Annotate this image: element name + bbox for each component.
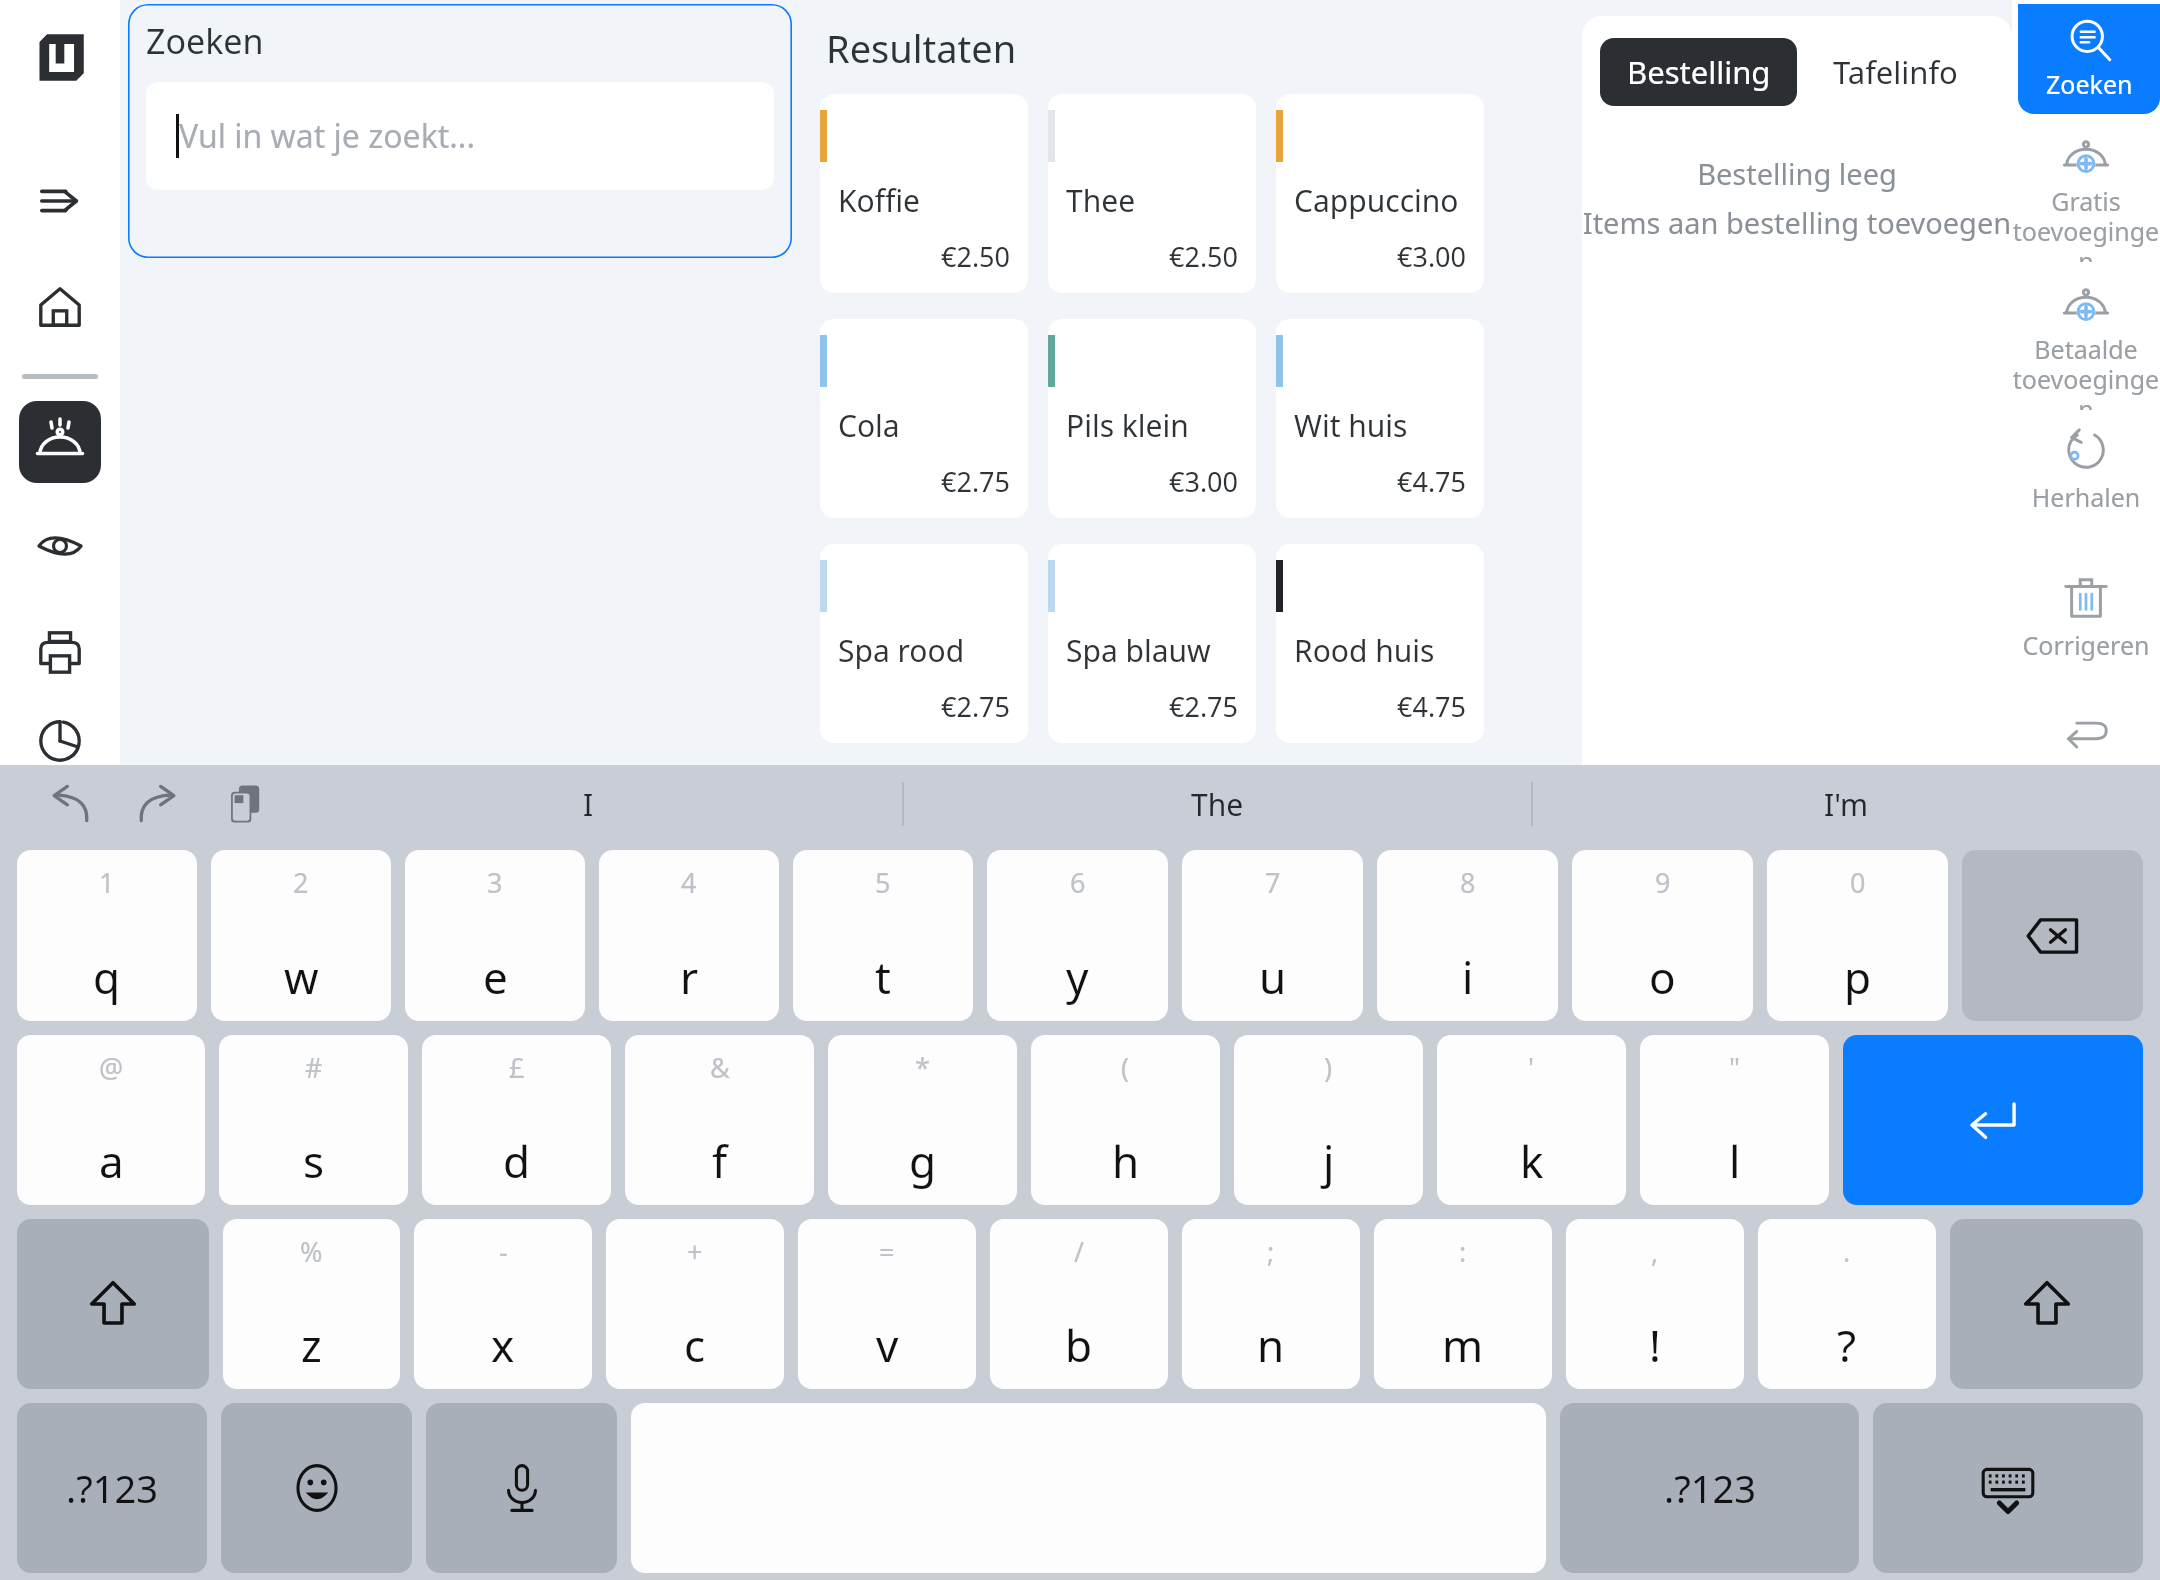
button[interactable]: & (625, 1035, 814, 1205)
button[interactable]: Rood huis (1276, 544, 1484, 743)
staticText: 1 (99, 864, 115, 901)
staticText: j (1323, 1131, 1335, 1191)
button[interactable]: # (219, 1035, 408, 1205)
button[interactable]: Redo (130, 776, 186, 832)
staticText: I (583, 784, 594, 825)
button[interactable]: The (904, 765, 1531, 843)
button[interactable]: * (828, 1035, 1017, 1205)
button[interactable]: mic (426, 1403, 617, 1573)
staticText: ( (1121, 1049, 1130, 1086)
button[interactable]: 9 (1572, 850, 1753, 1021)
staticText: ? (1837, 1315, 1857, 1375)
button[interactable]: 4 (599, 850, 779, 1021)
staticText: . (1843, 1233, 1851, 1270)
button[interactable]: % (223, 1219, 400, 1389)
staticText: ! (1649, 1315, 1661, 1375)
staticText: f (712, 1131, 728, 1191)
button[interactable]: ( (1031, 1035, 1220, 1205)
staticText: 9 (1655, 864, 1671, 901)
button[interactable]: Betaalde toevoegingen (2012, 262, 2160, 410)
button[interactable]: back (1962, 850, 2143, 1021)
button[interactable]: Zoeken (2018, 4, 2160, 114)
button[interactable]: .?123 (1560, 1403, 1859, 1573)
button[interactable]: Cola (820, 319, 1028, 518)
staticText: €2.75 (838, 463, 1010, 500)
staticText: y (1066, 947, 1089, 1007)
button[interactable]: Herhalen (2012, 410, 2160, 558)
button[interactable]: Print (19, 611, 101, 693)
button[interactable]: ' (1437, 1035, 1626, 1205)
button[interactable]: Orders (19, 401, 101, 483)
staticText: 4 (681, 864, 697, 901)
staticText: w (284, 947, 319, 1007)
button[interactable]: Koffie (820, 94, 1028, 293)
button[interactable]: Spa rood (820, 544, 1028, 743)
staticText: c (684, 1315, 706, 1375)
staticText: t (875, 947, 891, 1007)
button[interactable]: = (798, 1219, 976, 1389)
button[interactable]: Gratis toevoegingen (2012, 114, 2160, 262)
button[interactable]: Bestelling (1600, 38, 1797, 106)
button[interactable]: ; (1182, 1219, 1360, 1389)
button[interactable]: Home (19, 266, 101, 348)
button[interactable]: shift (17, 1219, 209, 1389)
button[interactable]: . (1758, 1219, 1936, 1389)
button[interactable]: , (1566, 1219, 1744, 1389)
button[interactable]: Transfer (19, 160, 101, 242)
button[interactable]: Spa blauw (1048, 544, 1256, 743)
button[interactable]: View (19, 505, 101, 587)
button[interactable]: shift (1950, 1219, 2143, 1389)
button[interactable]: Undo (42, 776, 98, 832)
button[interactable]: 7 (1182, 850, 1363, 1021)
button[interactable]: Wit huis (1276, 319, 1484, 518)
button[interactable]: Tafelinfo (1797, 38, 1994, 106)
staticText: m (1442, 1315, 1484, 1375)
staticText: The (1191, 784, 1244, 825)
button[interactable]: emoji (221, 1403, 412, 1573)
button[interactable]: Reports (19, 717, 101, 765)
button[interactable]: Logo (29, 26, 91, 88)
button[interactable]: Back (2012, 706, 2160, 765)
staticText: n (1257, 1315, 1285, 1375)
button[interactable]: enter (1843, 1035, 2143, 1205)
button[interactable]: + (606, 1219, 784, 1389)
button[interactable]: Corrigeren (2012, 558, 2160, 706)
button[interactable]: " (1640, 1035, 1829, 1205)
staticText: 7 (1265, 864, 1281, 901)
button[interactable]: Cappuccino (1276, 94, 1484, 293)
button[interactable]: ) (1234, 1035, 1423, 1205)
staticText: ' (1528, 1049, 1535, 1086)
staticText: €2.50 (1066, 238, 1238, 275)
staticText: €2.75 (838, 688, 1010, 725)
button[interactable]: 5 (793, 850, 973, 1021)
button[interactable]: Pils klein (1048, 319, 1256, 518)
staticText: ; (1267, 1233, 1275, 1270)
button[interactable]: : (1374, 1219, 1552, 1389)
button[interactable]: 0 (1767, 850, 1948, 1021)
staticText: s (303, 1131, 325, 1191)
button[interactable]: 2 (211, 850, 391, 1021)
button[interactable]: 8 (1377, 850, 1558, 1021)
button[interactable]: @ (17, 1035, 205, 1205)
button[interactable]: Clipboard (218, 776, 274, 832)
staticText: Tafelinfo (1833, 51, 1958, 93)
button[interactable]: I'm (1533, 765, 2160, 843)
button[interactable]: I (274, 765, 902, 843)
staticText: Items aan bestelling toevoegen (1582, 203, 2012, 242)
button[interactable]: / (990, 1219, 1168, 1389)
staticText: = (879, 1233, 895, 1270)
button[interactable]: Vul in wat je zoekt... (146, 82, 774, 190)
button[interactable]: - (414, 1219, 592, 1389)
button[interactable]: 1 (17, 850, 197, 1021)
button[interactable]: hide (1873, 1403, 2143, 1573)
staticText: Wit huis (1294, 405, 1408, 446)
button[interactable]: .?123 (17, 1403, 207, 1573)
button[interactable]: 6 (987, 850, 1168, 1021)
staticText: Herhalen (2012, 480, 2160, 514)
staticText: €4.75 (1294, 688, 1466, 725)
button[interactable]: £ (422, 1035, 611, 1205)
button[interactable]: 3 (405, 850, 585, 1021)
button[interactable]: Thee (1048, 94, 1256, 293)
staticText: €2.75 (1066, 688, 1238, 725)
